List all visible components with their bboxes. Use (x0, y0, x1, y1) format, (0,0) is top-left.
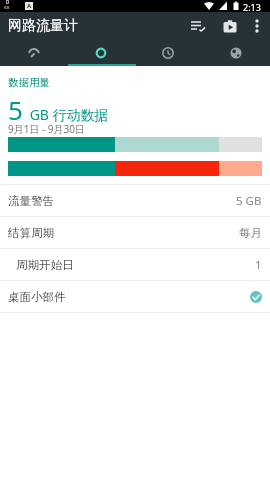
button[interactable] (134, 40, 202, 66)
button[interactable] (188, 16, 208, 36)
staticText: 桌面小部件 (8, 290, 66, 304)
button[interactable]: 流量警告 (0, 185, 270, 216)
button[interactable]: 结算周期 (0, 217, 270, 248)
button[interactable] (220, 16, 240, 36)
staticText: 数据用量 (8, 76, 50, 89)
button[interactable]: 桌面小部件 (0, 281, 270, 312)
staticText: 周期开始日 (16, 258, 74, 272)
staticText: 每月 (239, 226, 262, 240)
staticText: 0 (6, 0, 9, 6)
button[interactable] (0, 40, 67, 66)
staticText: 流量警告 (8, 194, 54, 208)
staticText: 结算周期 (8, 226, 54, 240)
button[interactable] (202, 40, 270, 66)
staticText: 5 GB 行动数据 (8, 92, 109, 127)
button[interactable] (248, 16, 266, 36)
staticText: 5 GB (236, 193, 262, 209)
staticText: 9月1日 - 9月30日 (8, 122, 86, 136)
staticText: A (27, 2, 32, 10)
staticText: 2:13 (243, 1, 261, 13)
staticText: 1 (255, 257, 262, 273)
button[interactable] (67, 40, 134, 66)
staticText: KB (4, 5, 10, 10)
staticText: 网路流量计 (8, 17, 78, 35)
button[interactable]: 周期开始日 (0, 249, 270, 280)
